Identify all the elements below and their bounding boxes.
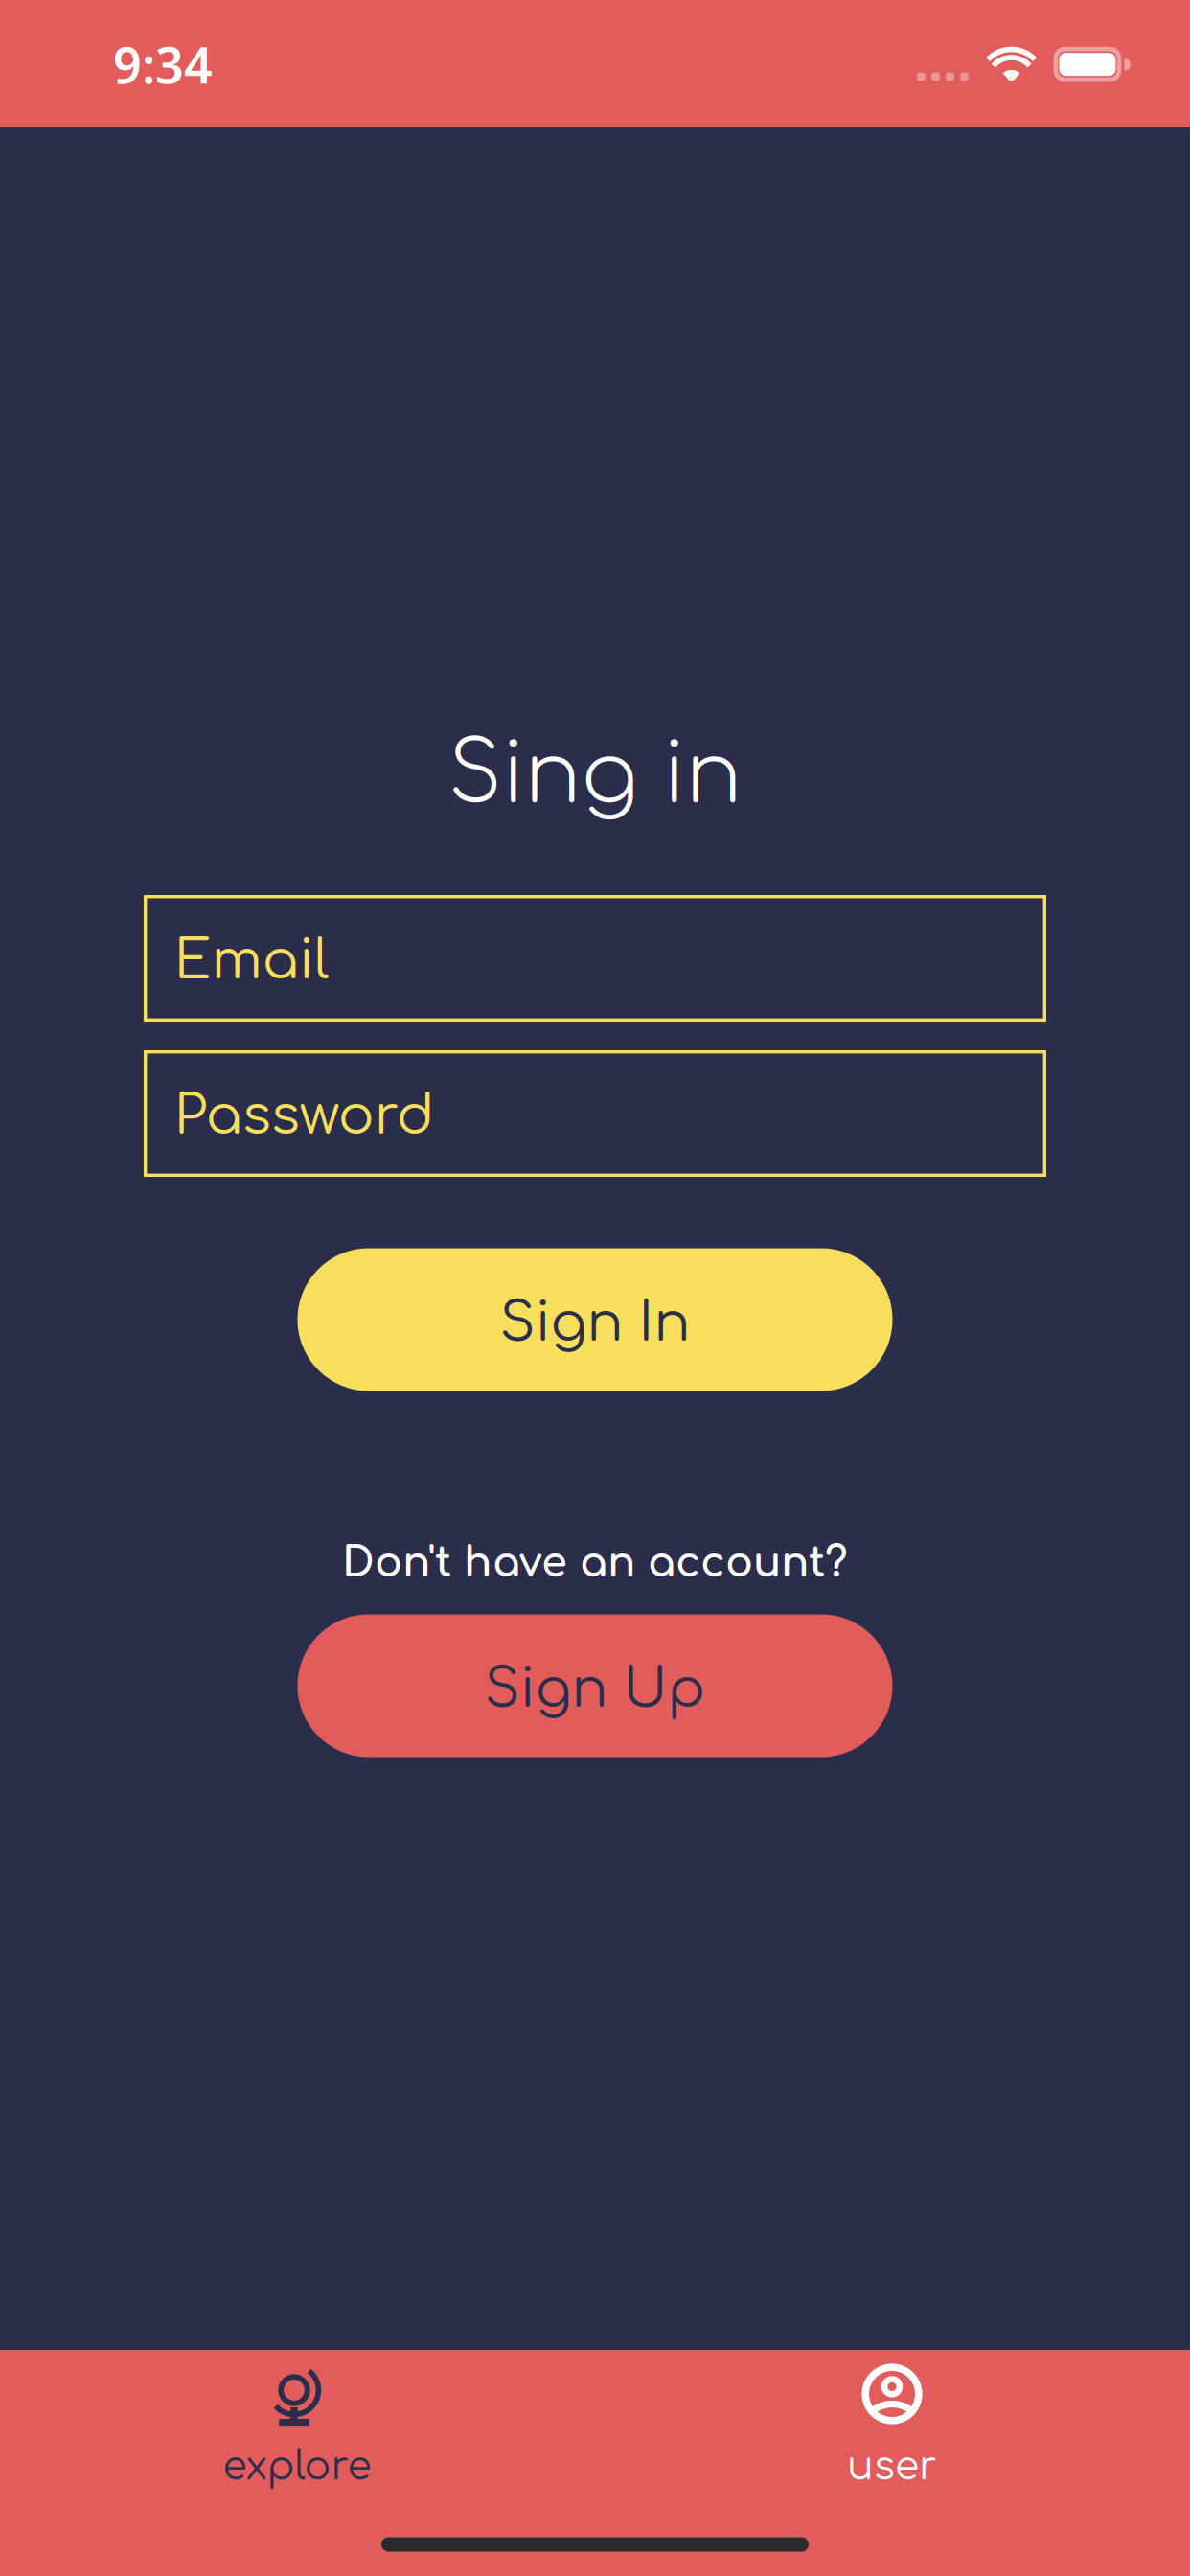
button[interactable]: Password: [144, 1050, 1046, 1177]
staticText: 9:34: [113, 31, 213, 97]
staticText: Sign Up: [484, 1660, 706, 1719]
staticText: Don't have an account?: [342, 1540, 848, 1586]
staticText: explore: [223, 2445, 371, 2489]
staticText: user: [847, 2445, 937, 2489]
staticText: Email: [174, 931, 329, 991]
button[interactable]: Sign Up: [297, 1614, 892, 1757]
button[interactable]: Sign In: [297, 1248, 892, 1391]
button[interactable]: explore: [0, 2350, 595, 2528]
button[interactable]: user: [595, 2350, 1190, 2528]
button[interactable]: Email: [144, 895, 1046, 1022]
staticText: Sing in: [448, 729, 742, 822]
staticText: Password: [174, 1087, 435, 1146]
staticText: Sign In: [500, 1294, 690, 1353]
